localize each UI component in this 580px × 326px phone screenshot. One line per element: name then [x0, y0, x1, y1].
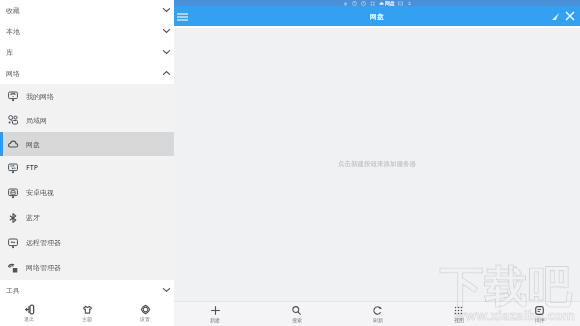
button[interactable]: 网盘: [0, 132, 174, 156]
button[interactable]: 新建: [174, 302, 256, 326]
button[interactable]: 主题: [58, 301, 116, 326]
staticText: 网络: [6, 69, 20, 78]
button[interactable]: FTP: [0, 156, 174, 180]
button[interactable]: 设置: [116, 301, 174, 326]
staticText: 网盘: [26, 140, 40, 149]
button[interactable]: 收藏: [0, 0, 174, 21]
button[interactable]: 库: [0, 42, 174, 63]
staticText: 局域网: [26, 116, 47, 125]
staticText: 点击新建按钮来添加服务器: [338, 160, 416, 168]
button[interactable]: 局域网: [0, 108, 174, 132]
staticText: 远程管理器: [26, 238, 61, 247]
staticText: 搜索: [292, 317, 302, 323]
staticText: 蓝牙: [26, 213, 40, 222]
button[interactable]: 远程管理器: [0, 230, 174, 255]
staticText: 设置: [140, 316, 150, 322]
staticText: 视图: [454, 317, 464, 323]
staticText: FTP: [26, 163, 39, 173]
staticText: 新建: [210, 317, 220, 323]
staticText: 库: [6, 48, 13, 57]
button[interactable]: 视图: [418, 302, 499, 326]
staticText: 主题: [82, 316, 92, 322]
staticText: 网络管理器: [26, 263, 61, 272]
button[interactable]: 网络: [0, 63, 174, 84]
staticText: 工具: [6, 286, 20, 295]
button[interactable]: 工具: [0, 280, 174, 301]
button[interactable]: 我的网络: [0, 84, 174, 108]
button[interactable]: 安卓电视: [0, 180, 174, 205]
staticText: 我的网络: [26, 92, 54, 101]
button[interactable]: 刷新: [337, 302, 418, 326]
staticText: 退出: [24, 316, 34, 322]
button[interactable]: Restore: [548, 9, 562, 23]
button[interactable]: 搜索: [256, 302, 337, 326]
staticText: 网盘: [385, 0, 395, 6]
staticText: 网盘: [370, 12, 384, 21]
button[interactable]: Close: [563, 9, 577, 23]
button[interactable]: 本地: [0, 21, 174, 42]
button[interactable]: 网络管理器: [0, 255, 174, 280]
staticText: 刷新: [373, 317, 383, 323]
button[interactable]: 排序: [499, 302, 580, 326]
staticText: 排序: [535, 317, 545, 323]
staticText: 收藏: [6, 6, 20, 15]
staticText: 安卓电视: [26, 188, 54, 197]
button[interactable]: 蓝牙: [0, 205, 174, 230]
staticText: 本地: [6, 27, 20, 36]
staticText: 下载吧: [439, 261, 571, 315]
staticText: www.xiazaiba.com: [454, 306, 575, 324]
button[interactable]: 退出: [0, 301, 58, 326]
button[interactable]: Menu: [174, 6, 191, 26]
